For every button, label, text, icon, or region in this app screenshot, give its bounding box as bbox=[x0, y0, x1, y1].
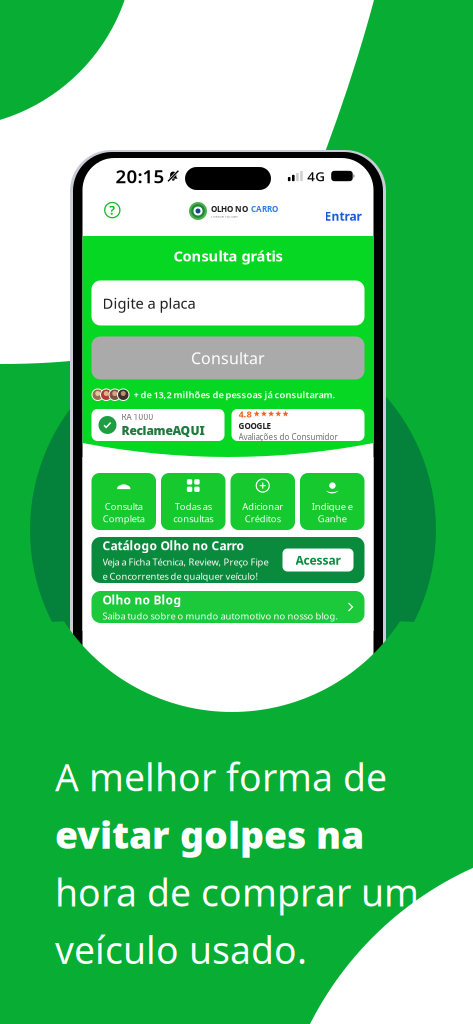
staticText: Consulta bbox=[105, 500, 143, 512]
button[interactable]: Olho no Blog bbox=[91, 591, 364, 623]
staticText: Saiba tudo sobre o mundo automotivo no n… bbox=[102, 610, 338, 622]
staticText: Ganhe bbox=[318, 512, 347, 525]
staticText: consultas bbox=[173, 512, 213, 525]
staticText: Avaliações do Consumidor bbox=[238, 432, 337, 442]
staticText: OLHO NO bbox=[211, 204, 248, 214]
staticText: ReclameAQUI bbox=[121, 422, 204, 438]
staticText: Consulta grátis bbox=[173, 246, 282, 265]
button[interactable]: Ajuda bbox=[100, 198, 124, 222]
staticText: e Concorrentes de qualquer veículo! bbox=[102, 570, 258, 582]
staticText: CONSULTA VEICULAR bbox=[211, 215, 238, 218]
staticText: A melhor forma de bbox=[55, 752, 387, 802]
button[interactable]: Indique e bbox=[300, 473, 364, 530]
staticText: Consultar bbox=[191, 347, 265, 369]
staticText: Entrar bbox=[324, 208, 361, 224]
staticText: Digite a placa bbox=[102, 293, 195, 313]
staticText: Veja a Ficha Técnica, Review, Preço Fipe bbox=[102, 556, 268, 568]
staticText: Olho no Blog bbox=[102, 592, 181, 608]
staticText: 4.8 bbox=[238, 408, 251, 420]
button[interactable]: Consultar bbox=[91, 336, 364, 379]
staticText: 20:15 bbox=[115, 164, 164, 188]
staticText: CARRO bbox=[251, 204, 278, 214]
staticText: Catálogo Olho no Carro bbox=[102, 538, 244, 553]
staticText: 4G bbox=[307, 167, 325, 185]
staticText: Completa bbox=[103, 512, 145, 525]
button[interactable]: Consulta bbox=[91, 473, 156, 530]
staticText: veículo usado. bbox=[55, 925, 307, 974]
button[interactable]: Digite a placa bbox=[91, 280, 364, 325]
staticText: RA 1000 bbox=[121, 412, 153, 422]
staticText: Acessar bbox=[295, 552, 340, 568]
button[interactable]: Todas as bbox=[161, 473, 225, 530]
staticText: Indique e bbox=[312, 500, 353, 512]
staticText: ? bbox=[109, 202, 115, 218]
staticText: hora de comprar um bbox=[55, 867, 419, 917]
staticText: + de 13,2 milhões de pessoas já consulta… bbox=[133, 388, 335, 401]
button[interactable]: Catálogo Olho no Carro bbox=[91, 537, 364, 583]
staticText: Todas as bbox=[175, 500, 212, 512]
staticText: evitar golpes na bbox=[55, 810, 364, 859]
staticText: Créditos bbox=[245, 512, 281, 525]
staticText: GOOGLE bbox=[238, 421, 270, 431]
button[interactable]: Adicionar bbox=[230, 473, 295, 530]
staticText: Adicionar bbox=[242, 500, 283, 512]
button[interactable]: Entrar bbox=[301, 206, 361, 226]
